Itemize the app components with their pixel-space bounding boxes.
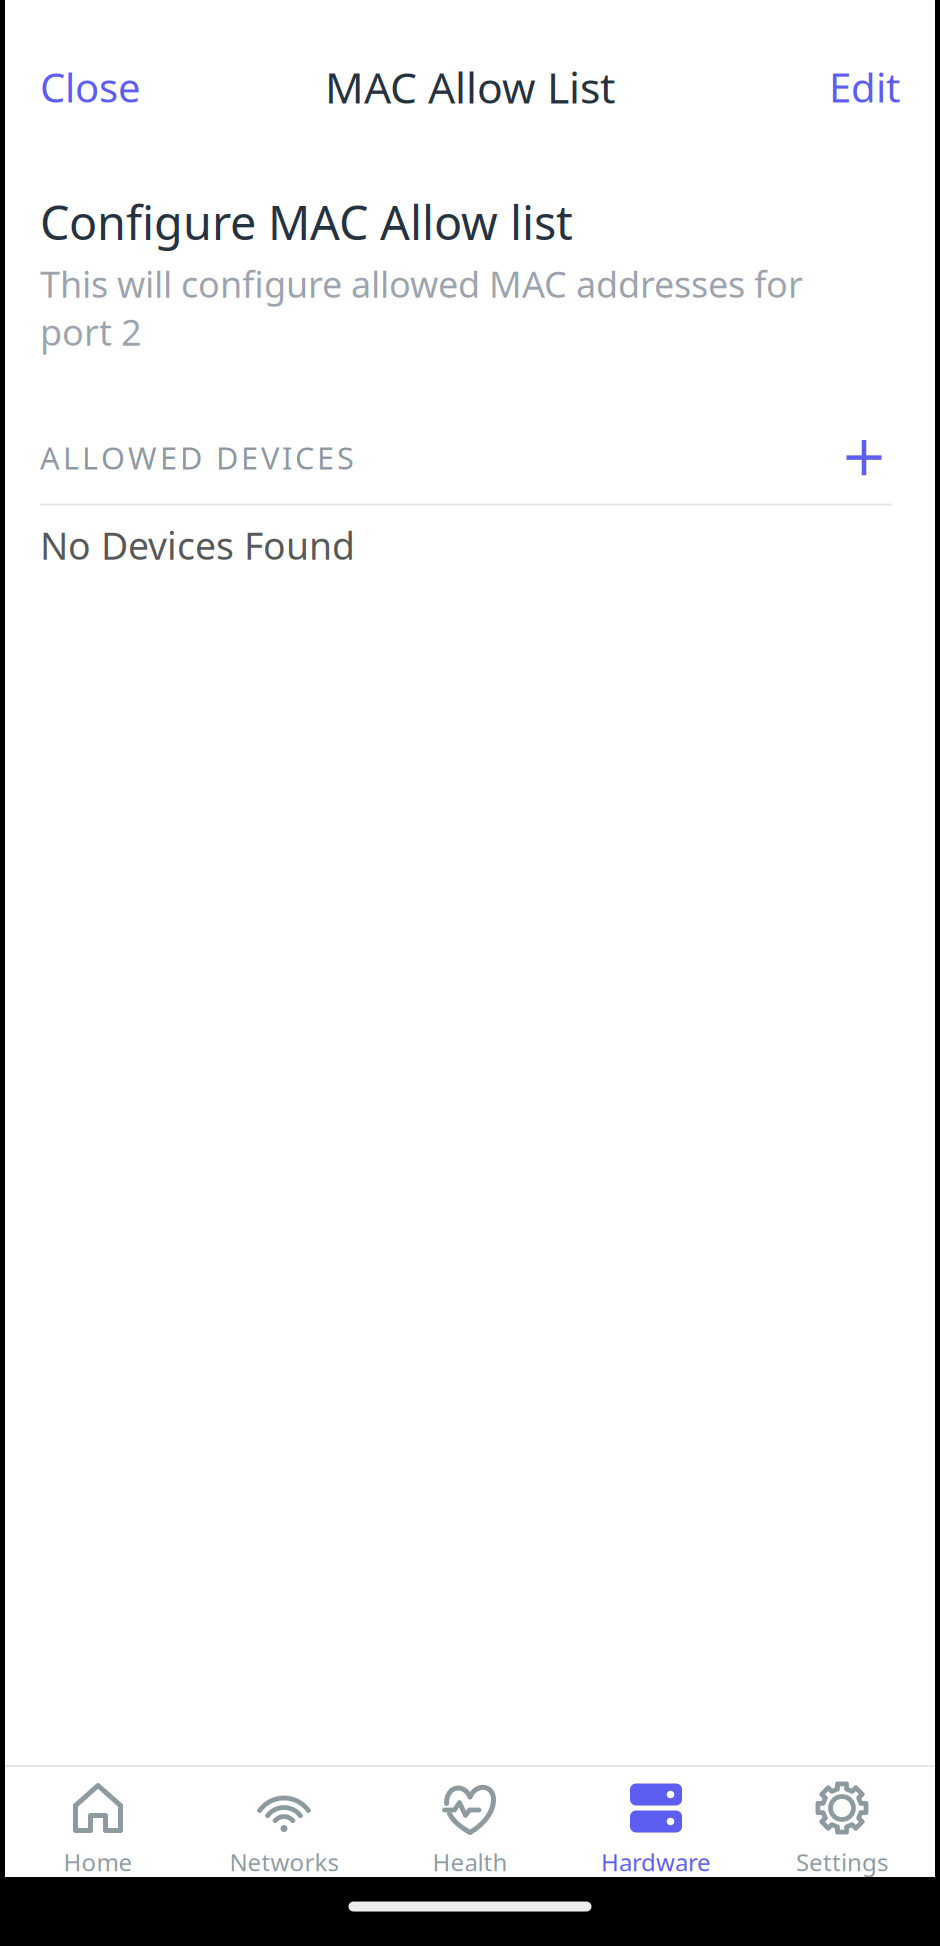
staticText: Close — [40, 60, 141, 113]
button[interactable]: Add device — [842, 436, 900, 480]
staticText: Configure MAC Allow list — [40, 191, 573, 253]
staticText: Hardware — [601, 1846, 711, 1878]
button[interactable]: Health — [377, 1767, 563, 1877]
button[interactable]: Edit — [817, 44, 912, 129]
button[interactable]: Settings — [749, 1767, 935, 1877]
button[interactable]: Close — [28, 44, 153, 129]
button[interactable]: Home — [5, 1767, 191, 1877]
button[interactable]: Networks — [191, 1767, 377, 1877]
staticText: MAC Allow List — [325, 59, 615, 115]
staticText: A L L O W E D D E V I C E S — [40, 437, 354, 478]
staticText: Settings — [796, 1846, 888, 1878]
button[interactable]: Hardware — [563, 1767, 749, 1877]
staticText: Home — [63, 1846, 132, 1878]
staticText: No Devices Found — [40, 521, 355, 570]
staticText: Networks — [229, 1846, 338, 1878]
staticText: Health — [432, 1846, 507, 1878]
staticText: This will configure allowed MAC addresse… — [40, 260, 803, 356]
staticText: Edit — [829, 60, 900, 113]
